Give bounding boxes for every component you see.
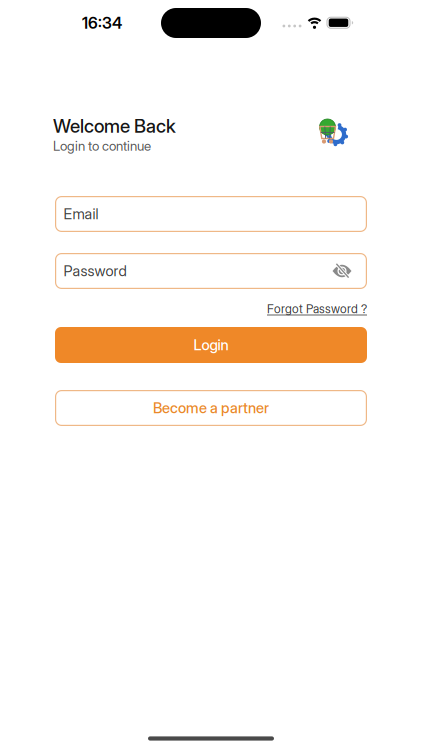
staticText: Login bbox=[193, 336, 228, 354]
staticText: 16:34 bbox=[82, 14, 122, 32]
button[interactable]: Become a partner bbox=[55, 390, 367, 426]
button[interactable]: Login bbox=[55, 327, 367, 363]
staticText: Password bbox=[63, 262, 126, 280]
staticText: Email bbox=[63, 205, 98, 223]
staticText: Forgot Password ? bbox=[267, 302, 367, 316]
staticText: Welcome Back bbox=[53, 115, 176, 137]
staticText: Become a partner bbox=[153, 399, 269, 417]
staticText: Login to continue bbox=[53, 138, 151, 154]
button[interactable]: Show password bbox=[332, 263, 367, 279]
button[interactable]: Forgot Password ? bbox=[267, 302, 367, 316]
